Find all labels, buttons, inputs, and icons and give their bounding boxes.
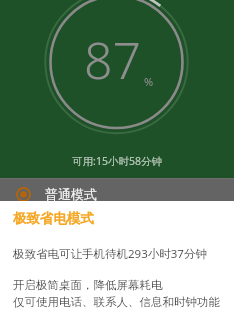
staticText: 开启极简桌面，降低屏幕耗电 xyxy=(13,278,163,292)
staticText: 仅可使用电话、联系人、信息和时钟功能 xyxy=(13,295,220,309)
staticText: 87 xyxy=(84,26,142,94)
button[interactable]: 极致省电模式 xyxy=(0,201,234,309)
staticText: 可用:15小时58分钟 xyxy=(72,154,162,168)
staticText: 极致省电模式 xyxy=(13,210,94,227)
button[interactable]: 普通模式 xyxy=(0,178,234,201)
staticText: 极致省电可让手机待机293小时37分钟 xyxy=(13,246,207,262)
staticText: % xyxy=(144,74,154,89)
staticText: 普通模式 xyxy=(45,186,97,202)
